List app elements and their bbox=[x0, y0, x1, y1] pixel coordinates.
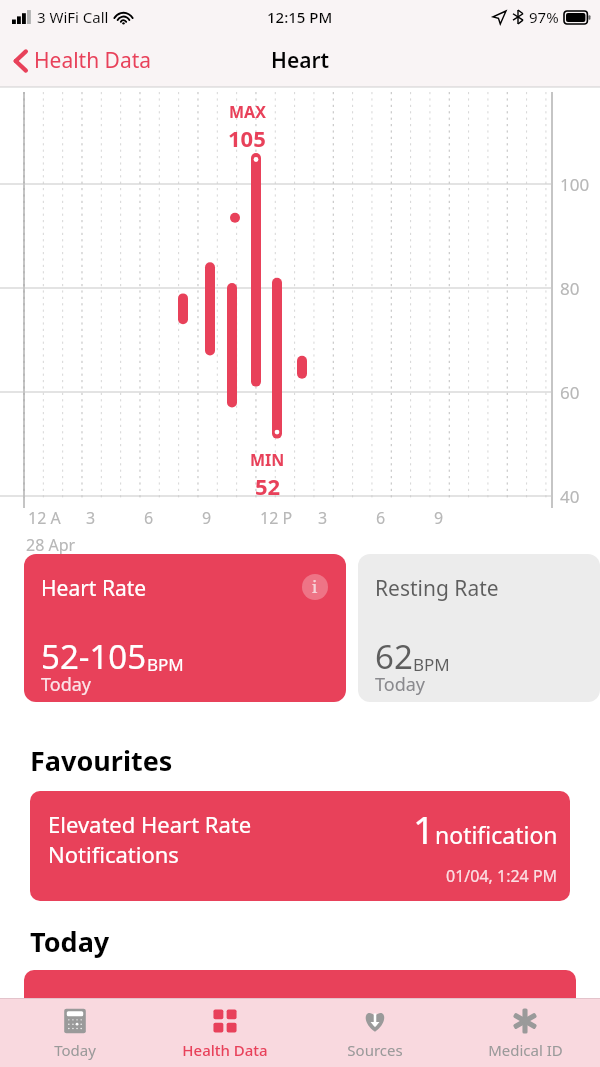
staticText: 3 bbox=[318, 507, 328, 529]
staticText: 9 bbox=[202, 507, 212, 529]
staticText: i bbox=[312, 576, 318, 598]
staticText: Health Data bbox=[182, 1040, 268, 1060]
staticText: Heart bbox=[271, 46, 330, 75]
staticText: Notifications bbox=[48, 839, 179, 869]
staticText: 52-105 bbox=[41, 634, 147, 679]
staticText: BPM bbox=[413, 653, 450, 676]
staticText: 40 bbox=[560, 485, 580, 508]
button[interactable]: Resting Rate bbox=[358, 554, 600, 702]
staticText: Favourites bbox=[30, 742, 173, 779]
staticText: 97% bbox=[529, 7, 559, 27]
button[interactable]: Health Data bbox=[150, 1000, 300, 1066]
staticText: MIN bbox=[250, 449, 285, 471]
staticText: 1 bbox=[413, 803, 435, 855]
staticText: Medical ID bbox=[488, 1040, 563, 1060]
staticText: Today bbox=[30, 923, 110, 960]
staticText: Health Data bbox=[34, 46, 152, 75]
staticText: Today bbox=[375, 672, 425, 697]
staticText: BPM bbox=[147, 653, 184, 676]
staticText: 100 bbox=[560, 173, 590, 196]
staticText: Today bbox=[54, 1040, 96, 1060]
button[interactable] bbox=[24, 970, 576, 1010]
staticText: Elevated Heart Rate bbox=[48, 809, 252, 839]
staticText: 52 bbox=[255, 471, 281, 501]
staticText: 80 bbox=[560, 277, 580, 300]
staticText: 28 Apr bbox=[26, 534, 76, 556]
staticText: 6 bbox=[376, 507, 386, 529]
staticText: Today bbox=[41, 672, 91, 697]
staticText: Heart Rate bbox=[41, 574, 147, 603]
staticText: Sources bbox=[347, 1040, 403, 1060]
button[interactable]: Sources bbox=[300, 1000, 450, 1066]
staticText: 3 WiFi Call bbox=[37, 7, 109, 27]
staticText: 105 bbox=[228, 123, 266, 153]
staticText: 60 bbox=[560, 381, 580, 404]
staticText: 6 bbox=[144, 507, 154, 529]
staticText: Resting Rate bbox=[375, 574, 499, 603]
staticText: MAX bbox=[229, 101, 266, 123]
staticText: 12 P bbox=[260, 507, 293, 529]
staticText: 62 bbox=[375, 634, 413, 679]
button[interactable]: Health Data bbox=[0, 40, 162, 81]
button[interactable]: Heart Rate bbox=[24, 554, 346, 702]
staticText: 9 bbox=[434, 507, 444, 529]
button[interactable]: Elevated Heart Rate bbox=[30, 791, 570, 901]
staticText: notification bbox=[435, 819, 558, 850]
staticText: 3 bbox=[86, 507, 96, 529]
button[interactable]: Info bbox=[302, 574, 328, 600]
staticText: 12 A bbox=[28, 507, 61, 529]
button[interactable]: Today bbox=[0, 1000, 150, 1066]
button[interactable]: Medical ID bbox=[450, 1000, 600, 1066]
staticText: 12:15 PM bbox=[267, 7, 333, 27]
staticText: 01/04, 1:24 PM bbox=[446, 865, 558, 887]
